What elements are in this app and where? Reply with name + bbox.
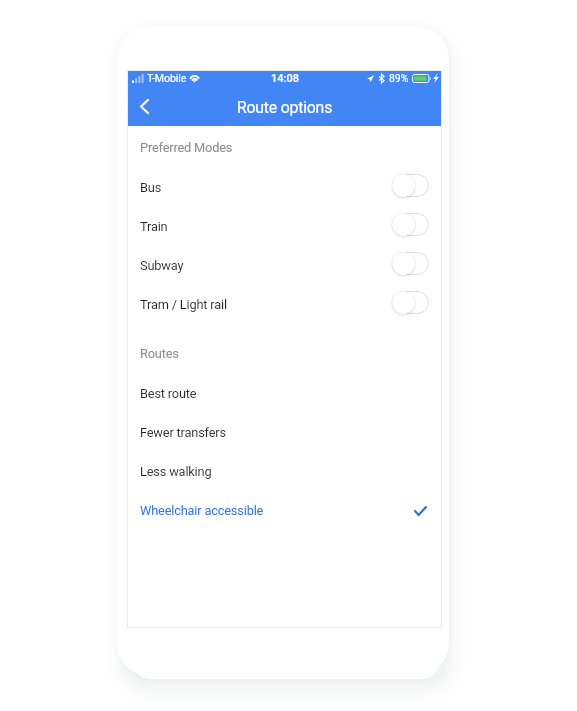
staticText: Tram / Light rail	[140, 297, 227, 312]
staticText: Route options	[237, 98, 333, 117]
staticText: 89%	[389, 72, 409, 84]
staticText: 14:08	[271, 72, 299, 85]
button[interactable]: Best route	[127, 374, 442, 413]
staticText: Bus	[140, 180, 162, 195]
staticText: Preferred Modes	[140, 140, 233, 155]
button[interactable]: Train	[127, 207, 442, 246]
button[interactable]: Wheelchair accessible	[127, 491, 442, 530]
staticText: Train	[140, 219, 168, 234]
button[interactable]: Fewer transfers	[127, 413, 442, 452]
button[interactable]: Back	[127, 86, 161, 126]
button[interactable]: Less walking	[127, 452, 442, 491]
staticText: Wheelchair accessible	[140, 503, 264, 518]
button[interactable]: Bus	[127, 168, 442, 207]
staticText: T-Mobile	[147, 72, 187, 84]
button[interactable]: Subway	[127, 246, 442, 285]
staticText: Routes	[140, 346, 179, 361]
staticText: Less walking	[140, 464, 212, 479]
staticText: Best route	[140, 386, 197, 401]
staticText: Fewer transfers	[140, 425, 226, 440]
staticText: Subway	[140, 258, 184, 273]
button[interactable]: Tram / Light rail	[127, 285, 442, 324]
